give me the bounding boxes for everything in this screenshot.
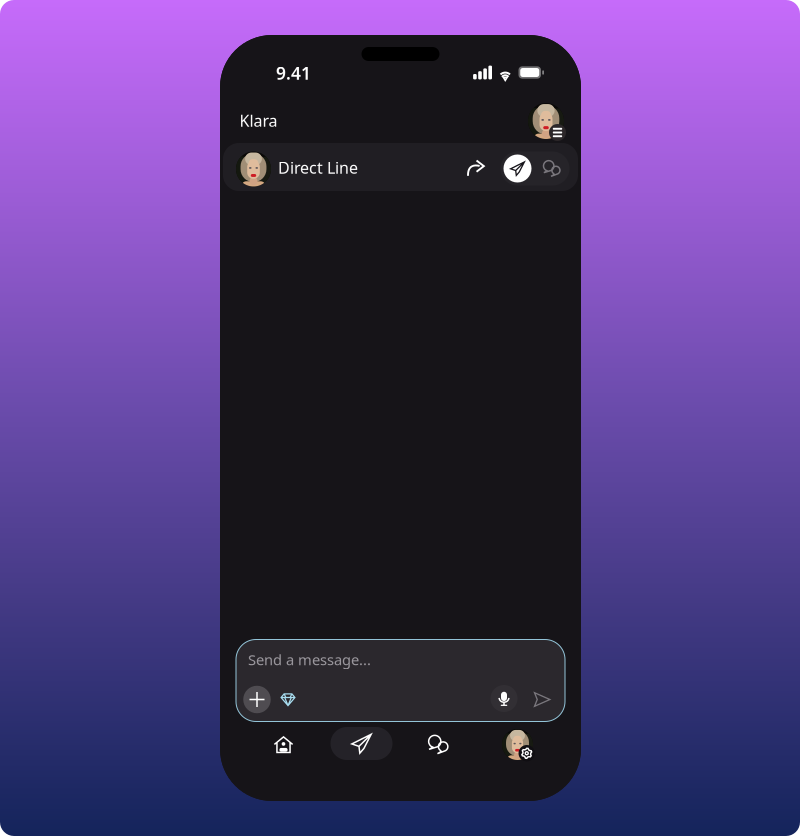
button[interactable]: Profile settings	[500, 727, 534, 761]
button[interactable]: Share	[460, 153, 490, 183]
button[interactable]: Menu	[527, 102, 565, 140]
staticText: Send a message...	[248, 650, 371, 669]
button[interactable]: Home	[261, 724, 305, 764]
button[interactable]: Premium	[276, 687, 300, 711]
button[interactable]: Direct line	[500, 151, 534, 185]
button[interactable]: Send	[530, 687, 554, 711]
staticText: Klara	[239, 110, 277, 131]
button[interactable]: Direct line	[330, 723, 392, 763]
button[interactable]: Voice message	[490, 684, 518, 712]
button[interactable]: Chats	[535, 151, 567, 185]
staticText: Direct Line	[278, 157, 358, 178]
button[interactable]: Chats	[416, 724, 460, 764]
button[interactable]: Add attachment	[242, 684, 272, 714]
staticText: 9.41	[276, 61, 311, 84]
